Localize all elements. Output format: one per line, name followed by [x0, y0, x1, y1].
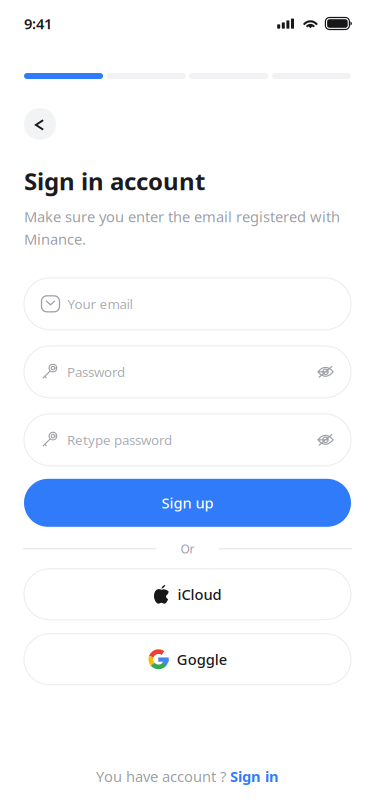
staticText: iCloud — [177, 584, 221, 604]
button[interactable]: Back — [24, 108, 56, 140]
button[interactable]: Show Retype password — [309, 433, 334, 446]
staticText: Sign up — [161, 493, 213, 513]
staticText: Minance. — [24, 229, 86, 249]
staticText: Goggle — [177, 649, 227, 669]
staticText: 9:41 — [24, 14, 52, 33]
button[interactable]: Show Password — [309, 365, 334, 378]
staticText: Sign in — [230, 766, 279, 786]
staticText: Your email — [67, 295, 132, 313]
staticText: Make sure you enter the email registered… — [24, 207, 340, 226]
button[interactable]: Sign in — [230, 766, 279, 786]
staticText: Sign in account — [24, 165, 205, 197]
button[interactable]: Sign up — [24, 479, 351, 527]
staticText: Or — [180, 541, 194, 557]
staticText: Retype password — [67, 431, 172, 449]
button[interactable]: iCloud — [24, 569, 351, 620]
button[interactable]: Goggle — [24, 634, 351, 685]
staticText: You have account ? — [96, 766, 226, 786]
staticText: Password — [67, 363, 125, 381]
